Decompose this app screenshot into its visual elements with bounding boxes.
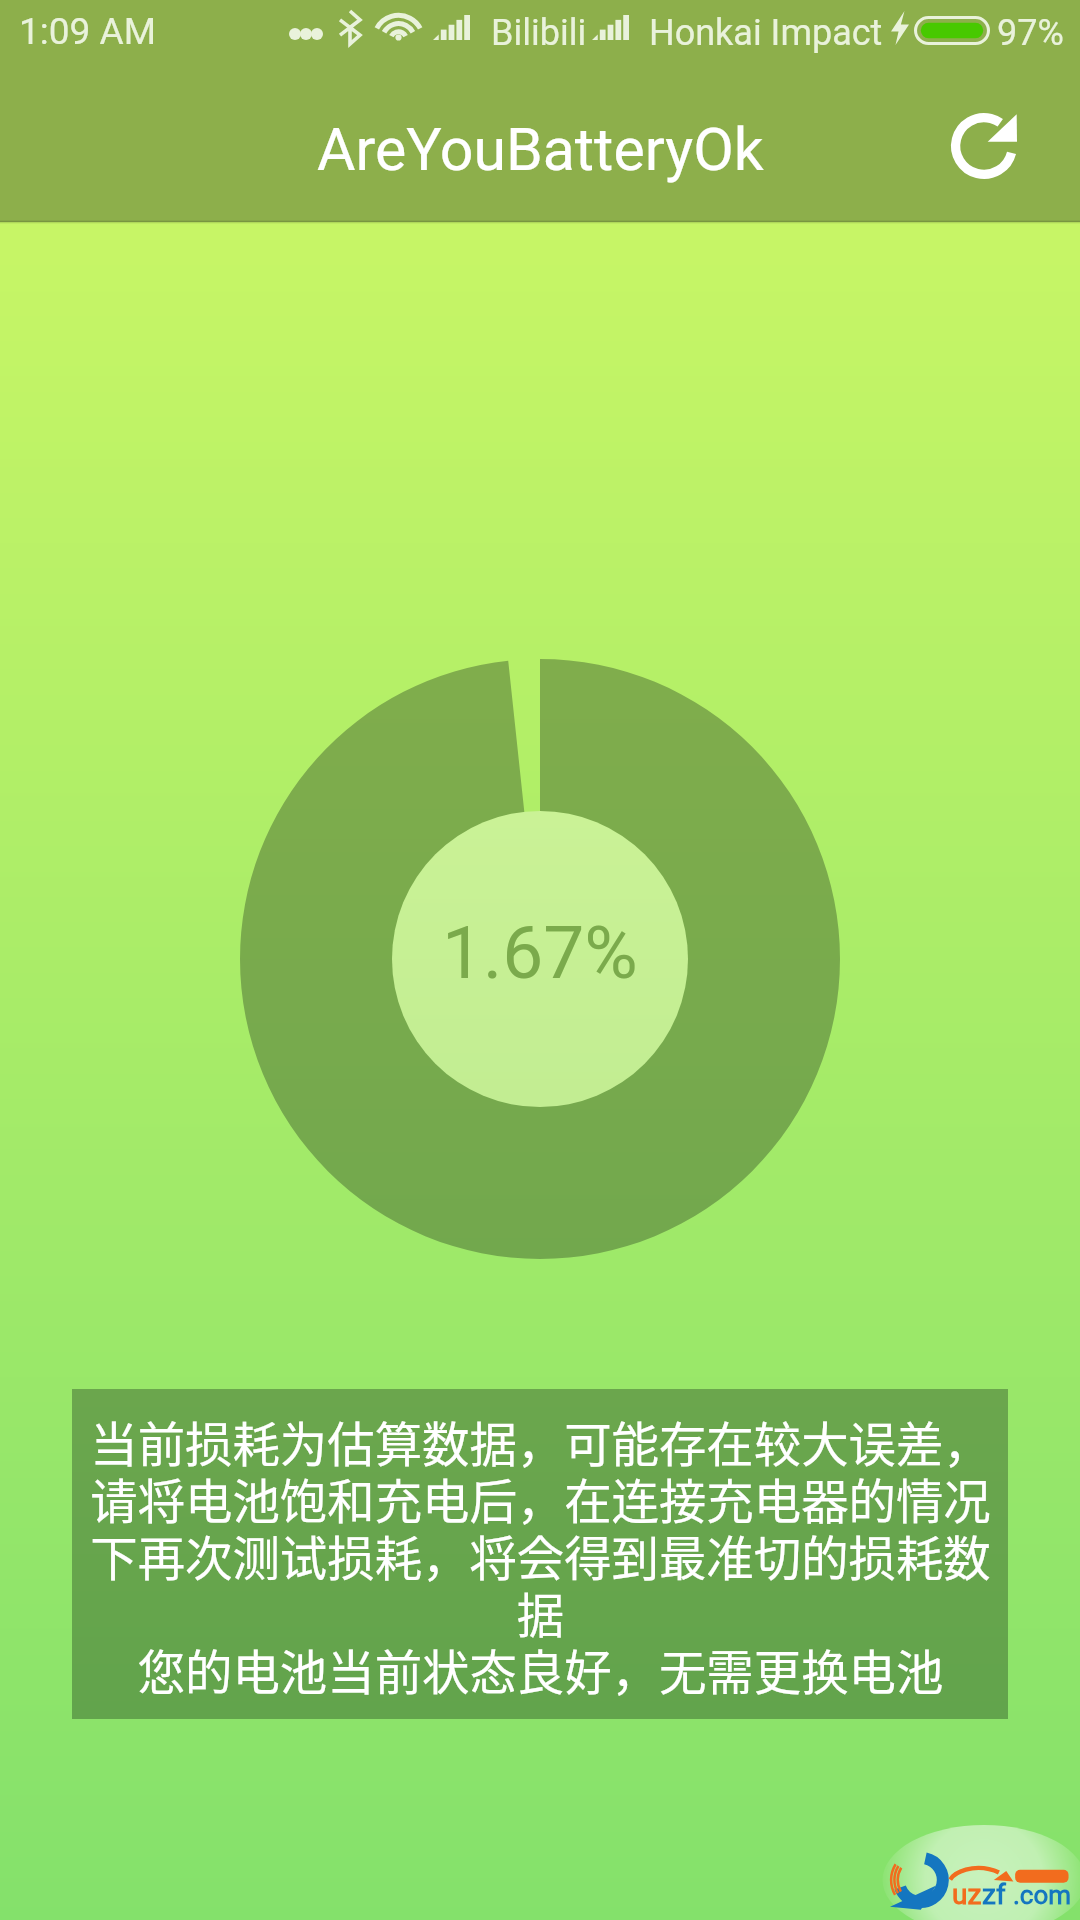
staticText: AreYouBatteryOk — [317, 115, 764, 184]
staticText: 97% — [997, 12, 1064, 54]
staticText: uz — [952, 1878, 982, 1911]
staticText: .com — [1013, 1880, 1072, 1910]
button[interactable]: Refresh — [936, 98, 1032, 194]
staticText: 1.67% — [442, 910, 638, 996]
staticText: 1:09 AM — [19, 10, 156, 53]
staticText: Honkai Impact — [649, 12, 883, 54]
staticText: zf — [982, 1878, 1006, 1911]
staticText: 当前损耗为估算数据，可能存在较大误差， 请将电池饱和充电后，在连接充电器的情况 … — [90, 1407, 991, 1703]
staticText: Bilibili — [491, 12, 587, 54]
